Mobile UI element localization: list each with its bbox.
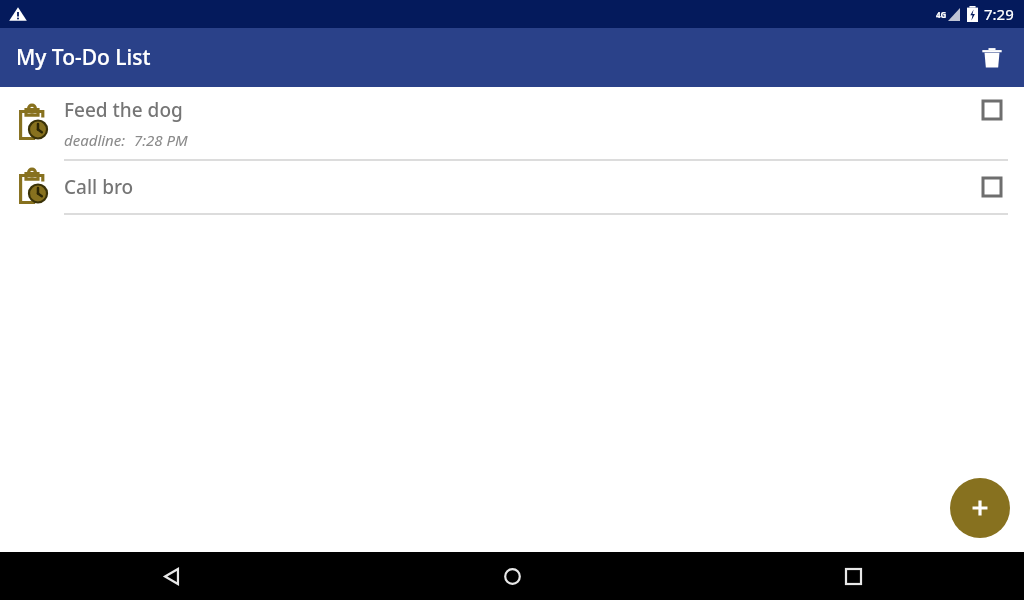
staticText: Call bro: [64, 174, 134, 200]
button[interactable]: Add task: [950, 478, 1010, 538]
button[interactable]: Mark Call bro complete: [968, 161, 1016, 213]
staticText: deadline:: [64, 130, 126, 150]
staticText: Feed the dog: [64, 97, 183, 123]
button[interactable]: Recent apps: [683, 552, 1024, 600]
button[interactable]: Back: [0, 552, 342, 600]
button[interactable]: Mark Feed the dog complete: [968, 87, 1016, 159]
button[interactable]: Feed the dog: [0, 87, 1024, 161]
button[interactable]: Call bro: [0, 161, 1024, 215]
staticText: 7:29: [984, 4, 1014, 24]
button[interactable]: Delete all tasks: [968, 34, 1016, 82]
button[interactable]: Home: [342, 552, 683, 600]
staticText: My To-Do List: [16, 43, 151, 72]
staticText: 4G: [936, 9, 947, 20]
staticText: 7:28 PM: [134, 130, 188, 150]
